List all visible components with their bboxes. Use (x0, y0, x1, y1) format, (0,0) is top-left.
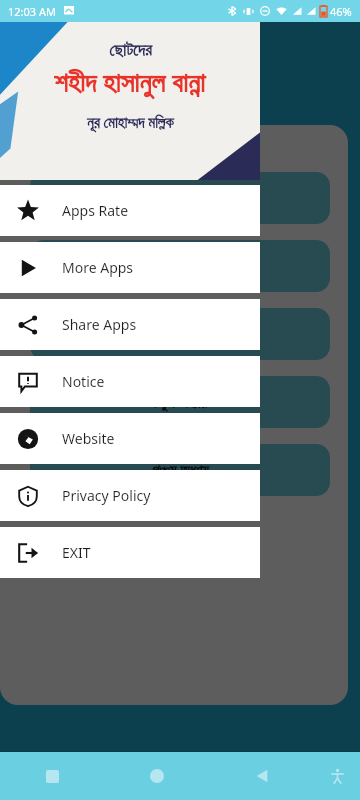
button[interactable]: Notice (0, 356, 260, 407)
staticText: 12:03 AM (8, 4, 56, 19)
staticText: Apps Rate (62, 201, 129, 220)
staticText: Notice (62, 372, 105, 391)
staticText: শহীদ হাসানুল বান্না (54, 63, 206, 100)
button[interactable]: Apps Rate (0, 185, 260, 236)
button[interactable]: চতুর্থ অধ্যায় (30, 376, 330, 428)
button[interactable]: More Apps (0, 242, 260, 293)
button[interactable]: প্রথম অধ্যায় (30, 172, 330, 224)
button[interactable]: Recent apps (0, 752, 104, 800)
button[interactable]: Website (0, 413, 260, 464)
button[interactable]: পঞ্চম অধ্যায় (30, 444, 330, 496)
staticText: চতুর্থ অধ্যায় (153, 392, 207, 412)
staticText: Website (62, 429, 115, 448)
staticText: Share Apps (62, 315, 137, 334)
staticText: Privacy Policy (62, 486, 151, 505)
staticText: More Apps (62, 258, 134, 277)
button[interactable]: তৃতীয় অধ্যায় (30, 308, 330, 360)
button[interactable]: Privacy Policy (0, 470, 260, 521)
button[interactable]: দ্বিতীয় অধ্যায় (30, 240, 330, 292)
staticText: EXIT (62, 543, 91, 562)
button[interactable]: EXIT (0, 527, 260, 578)
staticText: ছোটদের (109, 42, 152, 59)
staticText: পঞ্চম অধ্যায় (152, 460, 209, 480)
button[interactable]: Accessibility (314, 752, 360, 800)
button[interactable]: Back (209, 752, 314, 800)
button[interactable]: Home (104, 752, 209, 800)
button[interactable]: Share Apps (0, 299, 260, 350)
staticText: 46% (330, 4, 352, 19)
staticText: নূর মোহাম্মদ মল্লিক (87, 112, 174, 132)
